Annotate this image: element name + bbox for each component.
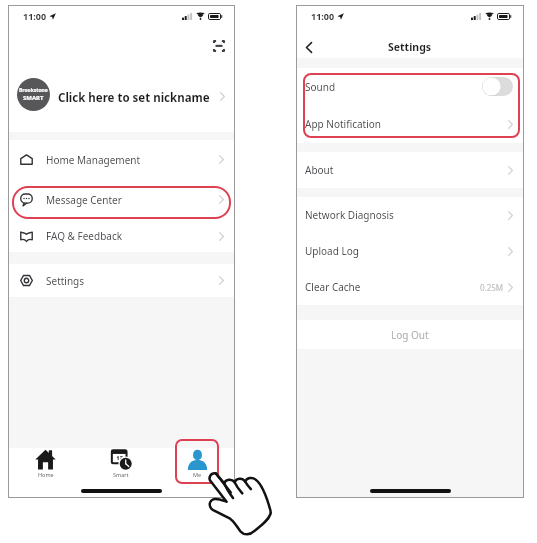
button[interactable]: Brookstone (8, 65, 235, 132)
staticText: Click here to set nickname (58, 90, 210, 106)
staticText: Clear Cache (305, 280, 361, 294)
button[interactable]: App Notification (296, 105, 524, 143)
staticText: Sound (305, 80, 336, 94)
button[interactable]: Sound toggle (482, 77, 513, 96)
button[interactable]: Message Center (8, 179, 235, 220)
staticText: Log Out (391, 328, 429, 342)
staticText: Upload Log (305, 244, 359, 258)
staticText: FAQ & Feedback (46, 229, 123, 243)
staticText: Settings (46, 274, 85, 288)
button[interactable]: Me (159, 448, 235, 479)
button[interactable]: Settings (8, 264, 235, 297)
button[interactable]: Smart (83, 448, 159, 479)
button[interactable]: Back (300, 38, 318, 56)
staticText: About (305, 163, 334, 177)
staticText: Me (193, 471, 202, 478)
staticText: App Notification (305, 117, 381, 131)
button[interactable]: Sound (296, 68, 524, 105)
button[interactable]: Log Out (296, 320, 524, 349)
button[interactable]: Home Management (8, 140, 235, 179)
staticText: Smart (113, 471, 129, 478)
staticText: Home Management (46, 153, 141, 167)
staticText: 0.25M (480, 282, 504, 293)
button[interactable]: Network Diagnosis (296, 197, 524, 233)
button[interactable]: Upload Log (296, 233, 524, 269)
button[interactable]: About (296, 152, 524, 188)
staticText: Settings (388, 40, 432, 54)
button[interactable]: Scan QR code (210, 37, 228, 55)
staticText: 11:00 (23, 10, 47, 22)
staticText: Network Diagnosis (305, 208, 394, 222)
staticText: 11:00 (311, 10, 335, 22)
button[interactable]: Home (8, 448, 83, 479)
button[interactable]: Clear Cache (296, 269, 524, 305)
staticText: SMART (23, 94, 44, 102)
staticText: Brookstone (19, 87, 48, 94)
button[interactable]: FAQ & Feedback (8, 220, 235, 252)
staticText: Message Center (46, 193, 122, 207)
staticText: Home (38, 471, 54, 478)
